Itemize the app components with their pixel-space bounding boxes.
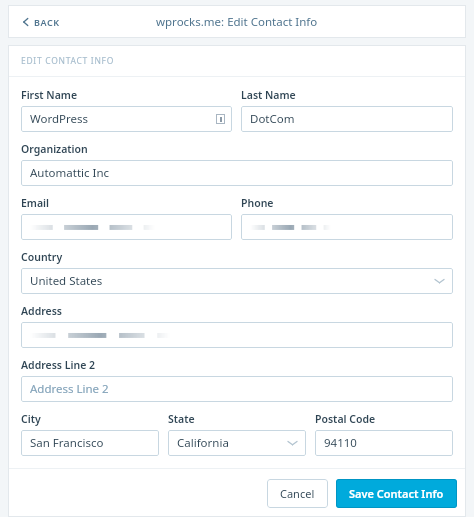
button[interactable]: Cancel <box>267 479 328 508</box>
staticText: DotCom <box>250 111 295 127</box>
other: Open dropdown <box>435 278 444 284</box>
staticText: BACK <box>34 16 60 28</box>
other: Open dropdown <box>288 440 297 446</box>
button[interactable]: BACK <box>16 11 66 33</box>
staticText: Cancel <box>280 486 315 501</box>
button[interactable]: San Francisco <box>21 430 159 456</box>
staticText: Save Contact Info <box>349 486 444 501</box>
button[interactable]: WordPress <box>21 106 232 132</box>
staticText: United States <box>30 273 103 289</box>
staticText: Automattic Inc <box>30 165 110 181</box>
staticText: WordPress <box>30 111 88 127</box>
button[interactable]: 94110 <box>315 430 453 456</box>
staticText: Phone <box>241 196 274 210</box>
staticText: EDIT CONTACT INFO <box>21 55 115 67</box>
staticText: California <box>177 435 229 451</box>
button[interactable]: Address Line 2 <box>21 376 453 402</box>
staticText: wprocks.me: Edit Contact Info <box>156 14 318 30</box>
staticText: Email <box>21 196 50 210</box>
button[interactable] <box>241 214 453 240</box>
button[interactable]: United States <box>21 268 453 294</box>
button[interactable]: Save Contact Info <box>336 479 457 508</box>
staticText: Postal Code <box>315 412 376 426</box>
staticText: Address Line 2 <box>21 358 96 372</box>
staticText: San Francisco <box>30 435 104 451</box>
staticText: State <box>168 412 195 426</box>
button[interactable]: DotCom <box>241 106 453 132</box>
staticText: Last Name <box>241 88 296 102</box>
button[interactable] <box>21 214 232 240</box>
button[interactable]: California <box>168 430 306 456</box>
other: Autofill <box>216 114 225 124</box>
staticText: Address <box>21 304 63 318</box>
staticText: City <box>21 412 41 426</box>
staticText: First Name <box>21 88 78 102</box>
button[interactable]: Automattic Inc <box>21 160 453 186</box>
button[interactable] <box>21 322 453 348</box>
staticText: Address Line 2 <box>30 381 109 397</box>
staticText: 94110 <box>324 435 357 451</box>
staticText: Country <box>21 250 63 264</box>
staticText: Organization <box>21 142 88 156</box>
